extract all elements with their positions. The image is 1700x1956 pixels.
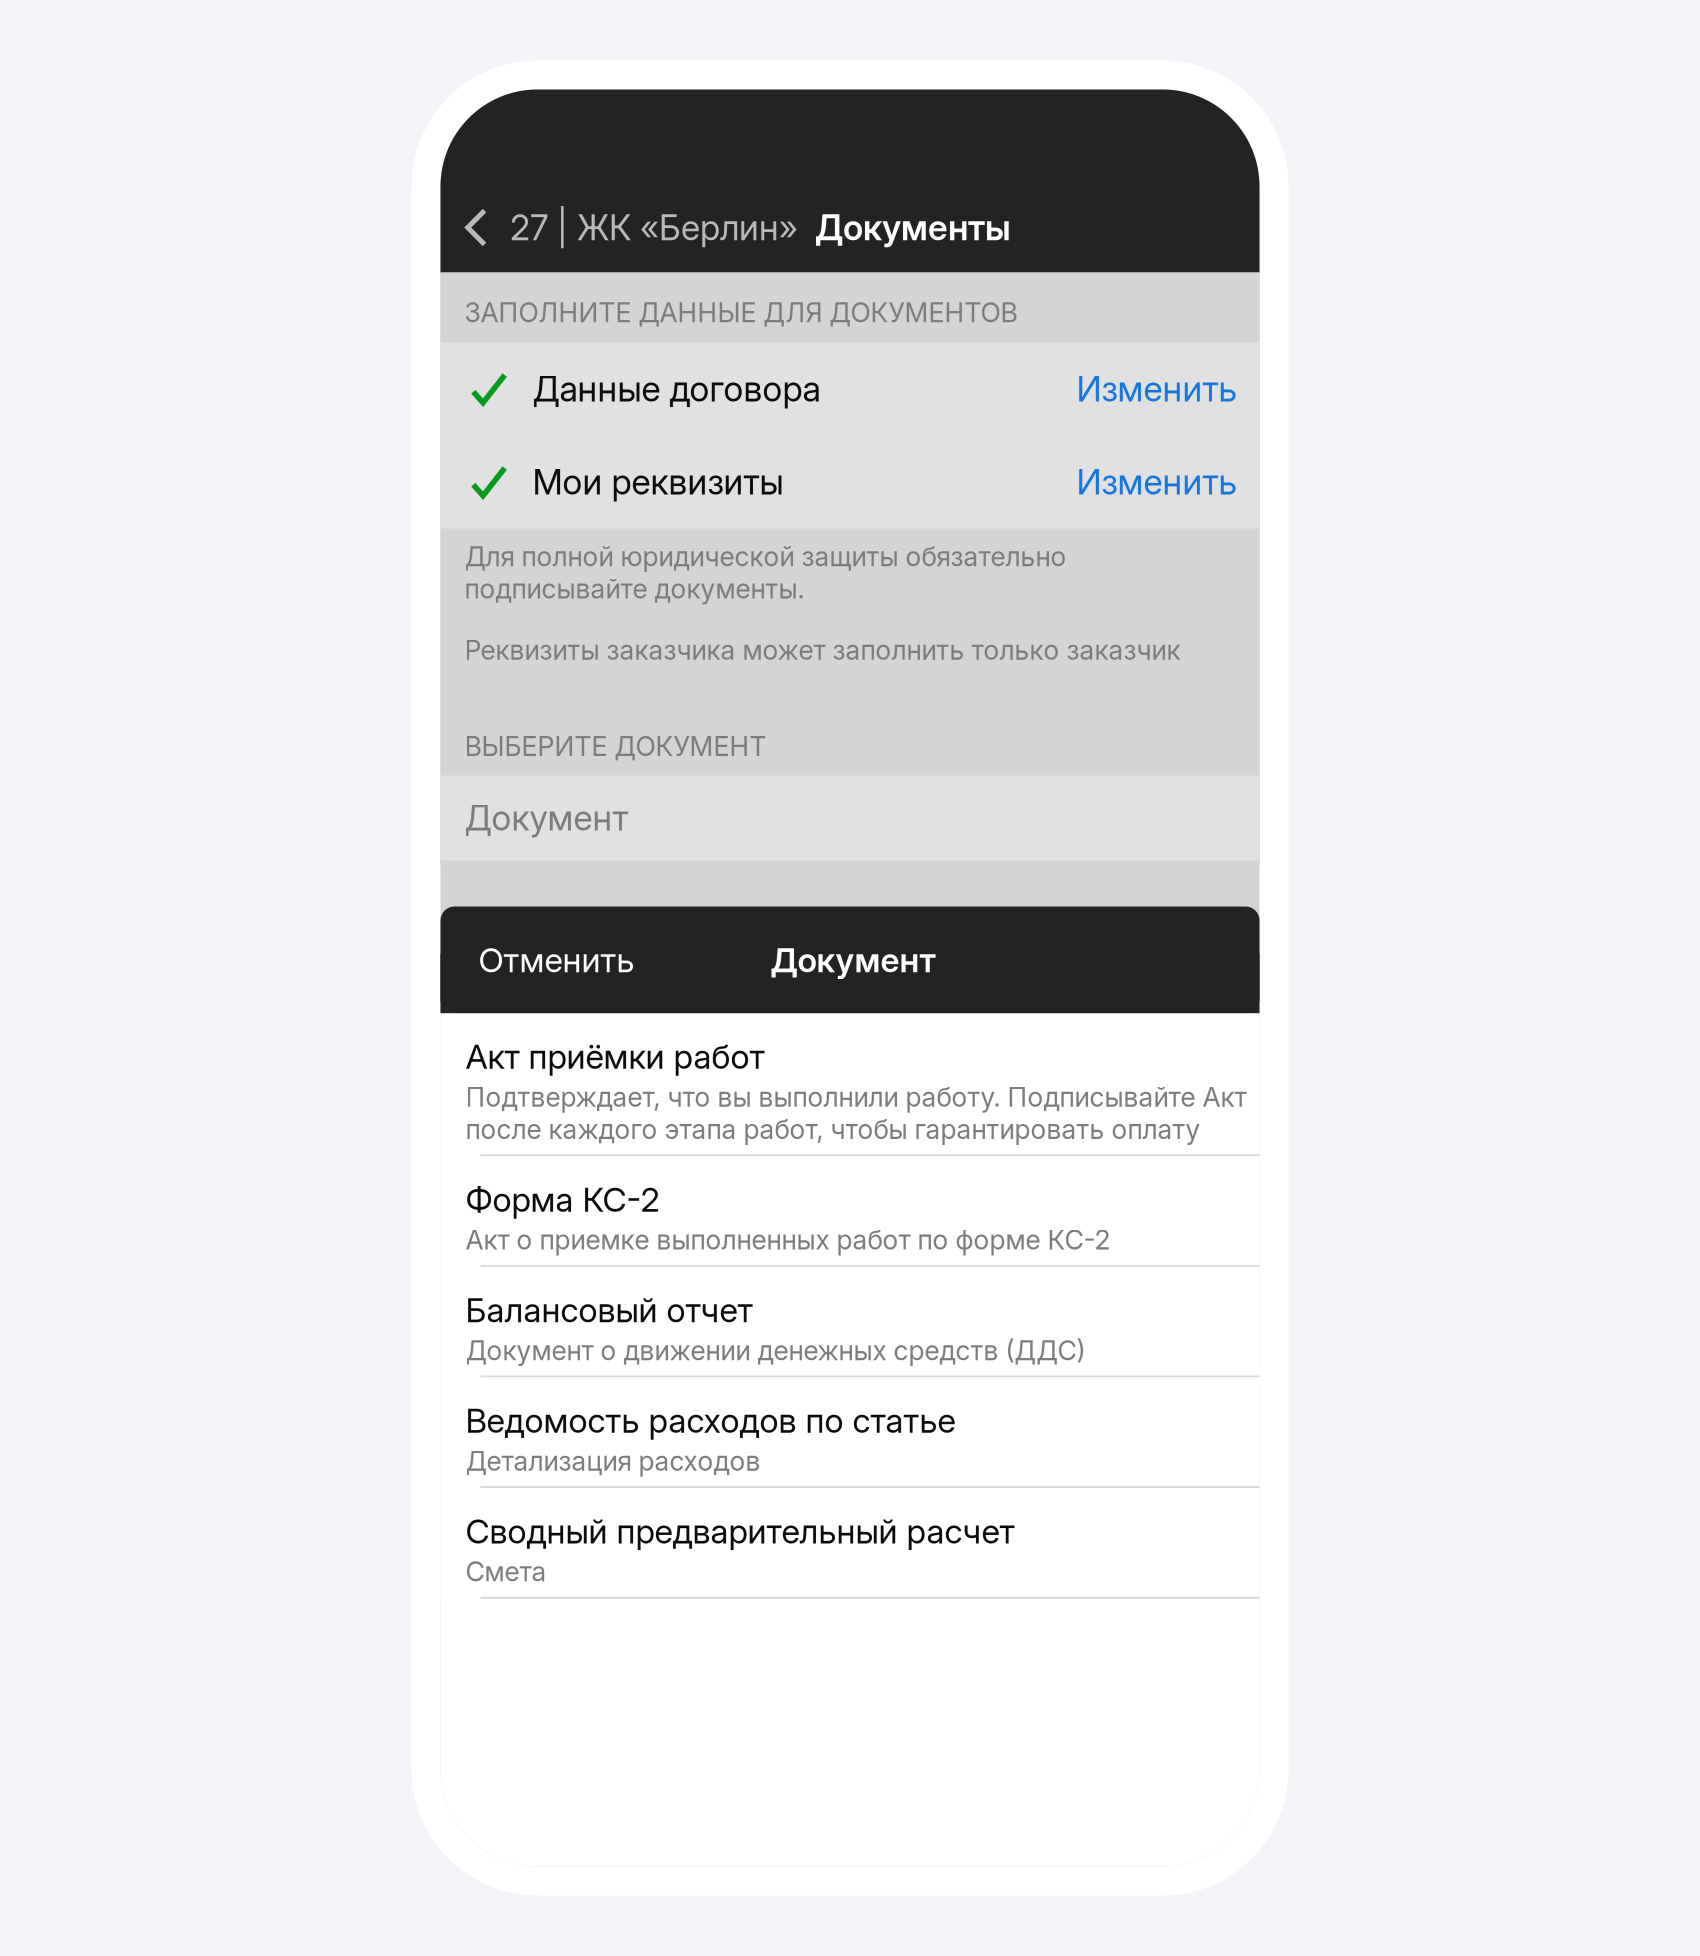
staticText: Изменить bbox=[1076, 368, 1237, 410]
staticText: Отменить bbox=[478, 940, 634, 980]
staticText: Подтверждает, что вы выполнили работу. П… bbox=[465, 1081, 1246, 1145]
staticText: 27 | ЖК «Берлин» bbox=[510, 207, 798, 248]
staticText: Реквизиты заказчика может заполнить толь… bbox=[464, 634, 1180, 666]
staticText: Детализация расходов bbox=[465, 1445, 760, 1477]
button[interactable]: Отменить bbox=[478, 940, 634, 980]
button[interactable]: Ведомость расходов по статье bbox=[440, 1378, 1259, 1488]
staticText: Документ bbox=[770, 940, 935, 980]
button[interactable]: Изменить bbox=[1076, 368, 1259, 410]
staticText: Для полной юридической защиты обязательн… bbox=[464, 540, 1066, 605]
staticText: Данные договора bbox=[532, 368, 820, 410]
staticText: Балансовый отчет bbox=[465, 1290, 752, 1330]
staticText: Мои реквизиты bbox=[532, 461, 783, 503]
staticText: Документ bbox=[464, 797, 628, 839]
staticText: ВЫБЕРИТЕ ДОКУМЕНТ bbox=[464, 730, 766, 762]
staticText: Сводный предварительный расчет bbox=[465, 1511, 1014, 1551]
button[interactable]: Балансовый отчет bbox=[440, 1267, 1259, 1378]
staticText: Акт о приемке выполненных работ по форме… bbox=[465, 1224, 1110, 1256]
staticText: ЗАПОЛНИТЕ ДАННЫЕ ДЛЯ ДОКУМЕНТОВ bbox=[464, 296, 1017, 329]
button[interactable]: Документ bbox=[440, 775, 1259, 860]
staticText: Ведомость расходов по статье bbox=[465, 1401, 955, 1441]
button[interactable]: Форма КС-2 bbox=[440, 1156, 1259, 1267]
button[interactable]: Документ bbox=[634, 940, 935, 980]
staticText: Документ о движении денежных средств (ДД… bbox=[465, 1334, 1085, 1367]
button[interactable]: Сводный предварительный расчет bbox=[440, 1488, 1259, 1599]
staticText: Документы bbox=[815, 207, 1011, 248]
staticText: Изменить bbox=[1076, 461, 1237, 503]
button[interactable]: Акт приёмки работ bbox=[440, 1013, 1259, 1156]
button[interactable]: Изменить bbox=[1076, 461, 1259, 503]
staticText: Акт приёмки работ bbox=[465, 1036, 764, 1077]
staticText: Смета bbox=[465, 1555, 546, 1588]
button[interactable]: Назад: 27 | ЖК «Берлин» bbox=[464, 207, 798, 248]
staticText: Форма КС-2 bbox=[465, 1179, 659, 1220]
